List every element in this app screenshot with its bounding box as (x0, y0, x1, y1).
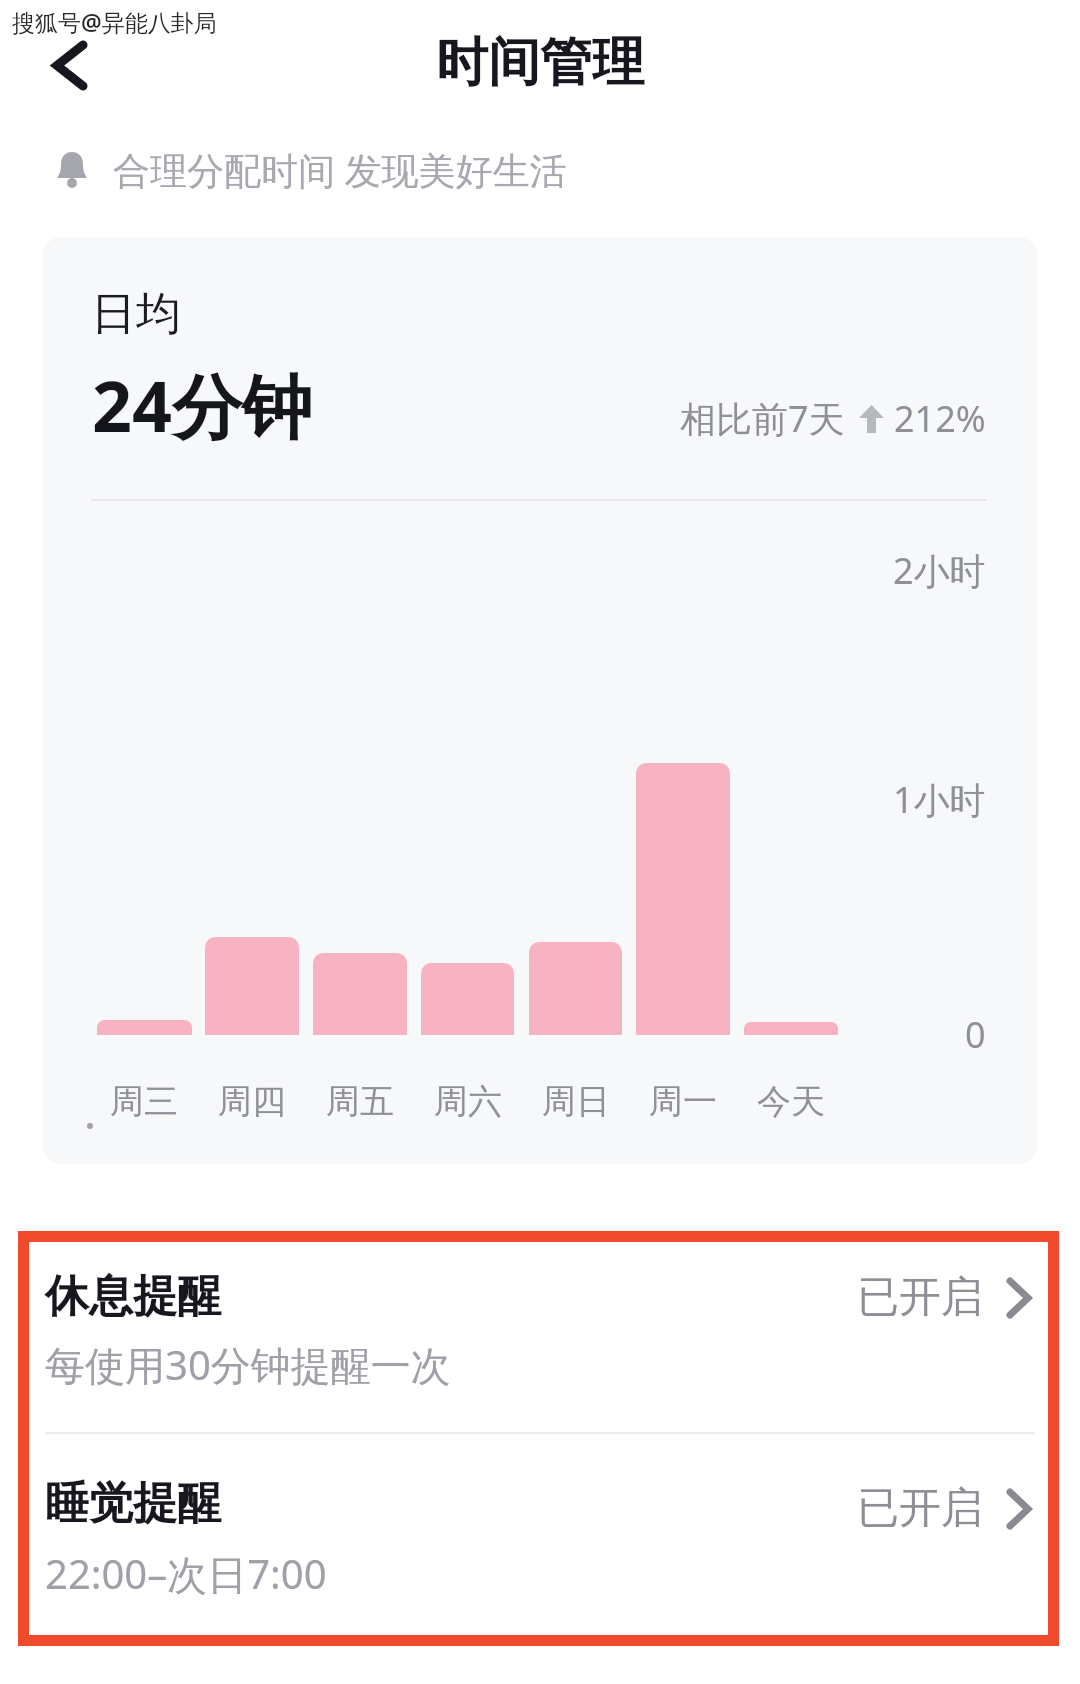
staticText: 周三 (110, 1080, 178, 1123)
staticText: 周一 (649, 1080, 717, 1123)
staticText: 0 (965, 1010, 986, 1059)
staticText: 2小时 (893, 546, 986, 595)
staticText: 日均 (91, 286, 181, 343)
staticText: 周六 (434, 1080, 502, 1123)
staticText: 每使用30分钟提醒一次 (45, 1337, 451, 1392)
staticText: 睡觉提醒 (45, 1476, 221, 1531)
staticText: 相比前7天 (680, 394, 845, 443)
staticText: 已开启 (857, 1482, 983, 1535)
staticText: 搜狐号@异能八卦局 (12, 6, 217, 37)
button[interactable]: 休息提醒 (0, 1241, 1080, 1433)
staticText: 已开启 (857, 1271, 983, 1324)
button[interactable] (34, 28, 104, 102)
staticText: 周日 (542, 1080, 610, 1123)
staticText: 1小时 (893, 775, 986, 824)
staticText: 24分钟 (92, 357, 313, 453)
staticText: 22:00–次日7:00 (45, 1546, 327, 1601)
staticText: 周四 (218, 1080, 286, 1123)
staticText: 时间管理 (436, 30, 644, 96)
staticText: 周五 (326, 1080, 394, 1123)
button[interactable]: 合理分配时间 发现美好生活 (55, 144, 567, 195)
staticText: 休息提醒 (45, 1269, 221, 1324)
button[interactable]: 睡觉提醒 (0, 1450, 1080, 1640)
staticText: 今天 (757, 1080, 825, 1123)
staticText: 合理分配时间 发现美好生活 (113, 144, 567, 195)
staticText: 212% (894, 394, 986, 443)
